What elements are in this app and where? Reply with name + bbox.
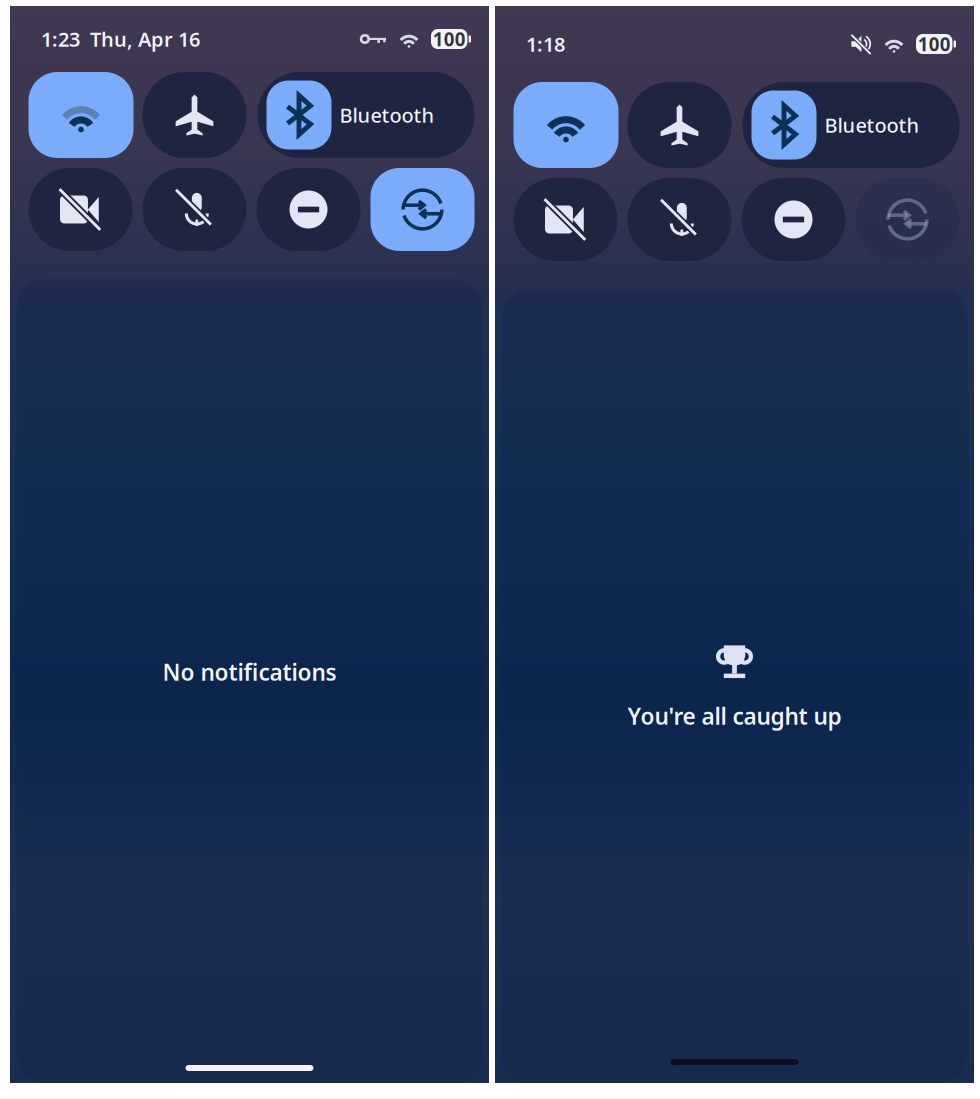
- button[interactable]: Airplane mode: [142, 72, 246, 158]
- button[interactable]: Camera access: [28, 168, 132, 251]
- staticText: 1:18: [526, 31, 565, 57]
- staticText: No notifications: [162, 657, 336, 687]
- button[interactable]: Camera access: [513, 178, 617, 261]
- button[interactable]: Internet: [513, 82, 618, 168]
- button[interactable]: Airplane mode: [627, 82, 731, 168]
- staticText: Thu, Apr 16: [80, 26, 200, 52]
- button[interactable]: Mic access: [627, 178, 731, 261]
- button[interactable]: Do not disturb: [741, 178, 845, 261]
- button[interactable]: Mic access: [142, 168, 246, 251]
- button[interactable]: Internet: [28, 72, 133, 158]
- staticText: Bluetooth: [339, 102, 434, 128]
- staticText: You're all caught up: [627, 701, 841, 731]
- staticText: 1:23: [41, 26, 80, 52]
- button[interactable]: Bluetooth: [257, 72, 474, 158]
- staticText: Bluetooth: [824, 112, 919, 138]
- staticText: 100: [433, 27, 466, 51]
- button[interactable]: Data saver: [855, 178, 959, 261]
- button[interactable]: Data saver: [370, 168, 474, 251]
- button[interactable]: Do not disturb: [256, 168, 360, 251]
- staticText: 100: [918, 32, 951, 56]
- button[interactable]: Bluetooth: [742, 82, 959, 168]
